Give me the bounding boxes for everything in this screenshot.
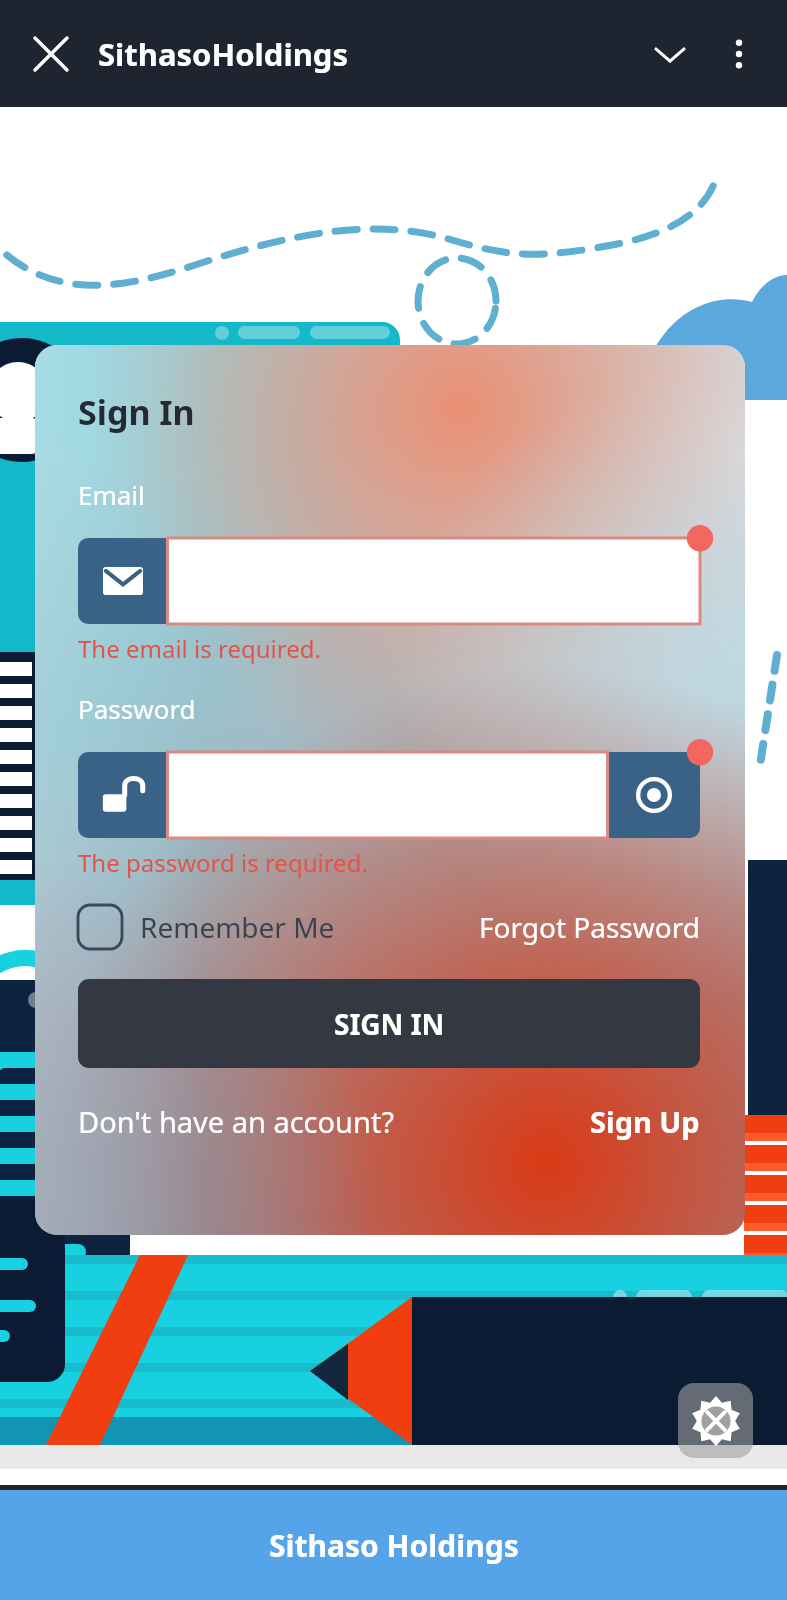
staticText: Password [78, 691, 196, 726]
staticText: Forgot Password [479, 908, 700, 946]
button[interactable]: More options [707, 22, 771, 86]
staticText: Sign Up [590, 1102, 700, 1141]
button[interactable]: SIGN IN [78, 979, 700, 1068]
staticText: Remember Me [140, 908, 335, 946]
button[interactable]: Settings [678, 1383, 753, 1458]
staticText: SithasoHoldings [98, 33, 348, 75]
button[interactable]: Close [18, 21, 84, 87]
button[interactable]: Show password [78, 752, 700, 838]
button[interactable]: Remember Me [78, 905, 335, 949]
button[interactable] [78, 538, 700, 624]
staticText: Don't have an account? [78, 1102, 394, 1141]
button[interactable]: Expand [633, 17, 707, 91]
staticText: SIGN IN [334, 1005, 445, 1043]
staticText: The password is required. [78, 846, 368, 879]
button[interactable]: Don't have an account? [78, 1102, 394, 1141]
staticText: Sign In [78, 389, 195, 435]
button[interactable]: Sign Up [590, 1102, 700, 1141]
staticText: Email [78, 477, 145, 512]
button[interactable]: Forgot Password [479, 908, 700, 946]
staticText: The email is required. [78, 632, 321, 665]
staticText: Sithaso Holdings [269, 1525, 519, 1566]
button[interactable]: Show password [608, 752, 700, 838]
button[interactable]: Sithaso Holdings [0, 1490, 787, 1600]
